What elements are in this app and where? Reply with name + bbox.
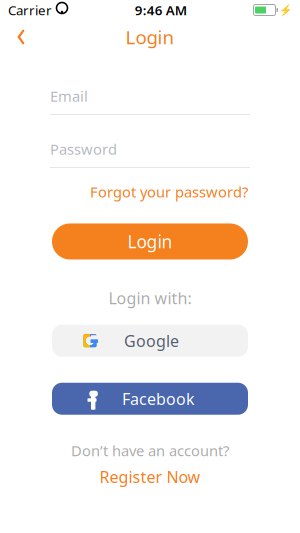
staticText: ⚡ bbox=[279, 4, 292, 16]
button[interactable]: Login bbox=[52, 223, 248, 259]
button[interactable]: Facebook bbox=[52, 383, 248, 415]
button[interactable]: Back bbox=[6, 22, 36, 52]
staticText: 9:46 AM bbox=[135, 1, 187, 19]
staticText: Forgot your password? bbox=[90, 182, 248, 201]
staticText: Login bbox=[127, 230, 172, 253]
button[interactable]: Google bbox=[52, 325, 248, 357]
staticText: Don’t have an account? bbox=[71, 441, 229, 460]
staticText: Facebook bbox=[122, 388, 195, 409]
staticText: Email bbox=[50, 86, 88, 106]
staticText: Login bbox=[125, 25, 174, 49]
staticText: Google bbox=[124, 330, 179, 351]
staticText: Login with: bbox=[108, 287, 191, 309]
button[interactable]: Forgot your password? bbox=[88, 178, 250, 205]
staticText: Carrier bbox=[8, 1, 52, 19]
button[interactable]: Register Now bbox=[93, 463, 206, 490]
staticText: Register Now bbox=[99, 466, 200, 487]
staticText: Password bbox=[50, 139, 117, 159]
